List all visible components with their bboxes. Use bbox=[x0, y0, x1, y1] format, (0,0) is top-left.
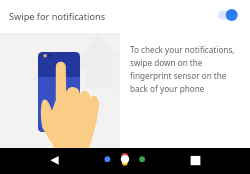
button[interactable]: Recent apps bbox=[186, 149, 206, 173]
button[interactable]: Home bbox=[100, 149, 150, 173]
button[interactable]: Back bbox=[44, 149, 66, 173]
staticText: Swipe for notifications bbox=[9, 10, 106, 23]
button[interactable]: Swipe for notifications toggle bbox=[212, 3, 244, 30]
staticText: To check your notifications, swipe down … bbox=[130, 44, 235, 95]
